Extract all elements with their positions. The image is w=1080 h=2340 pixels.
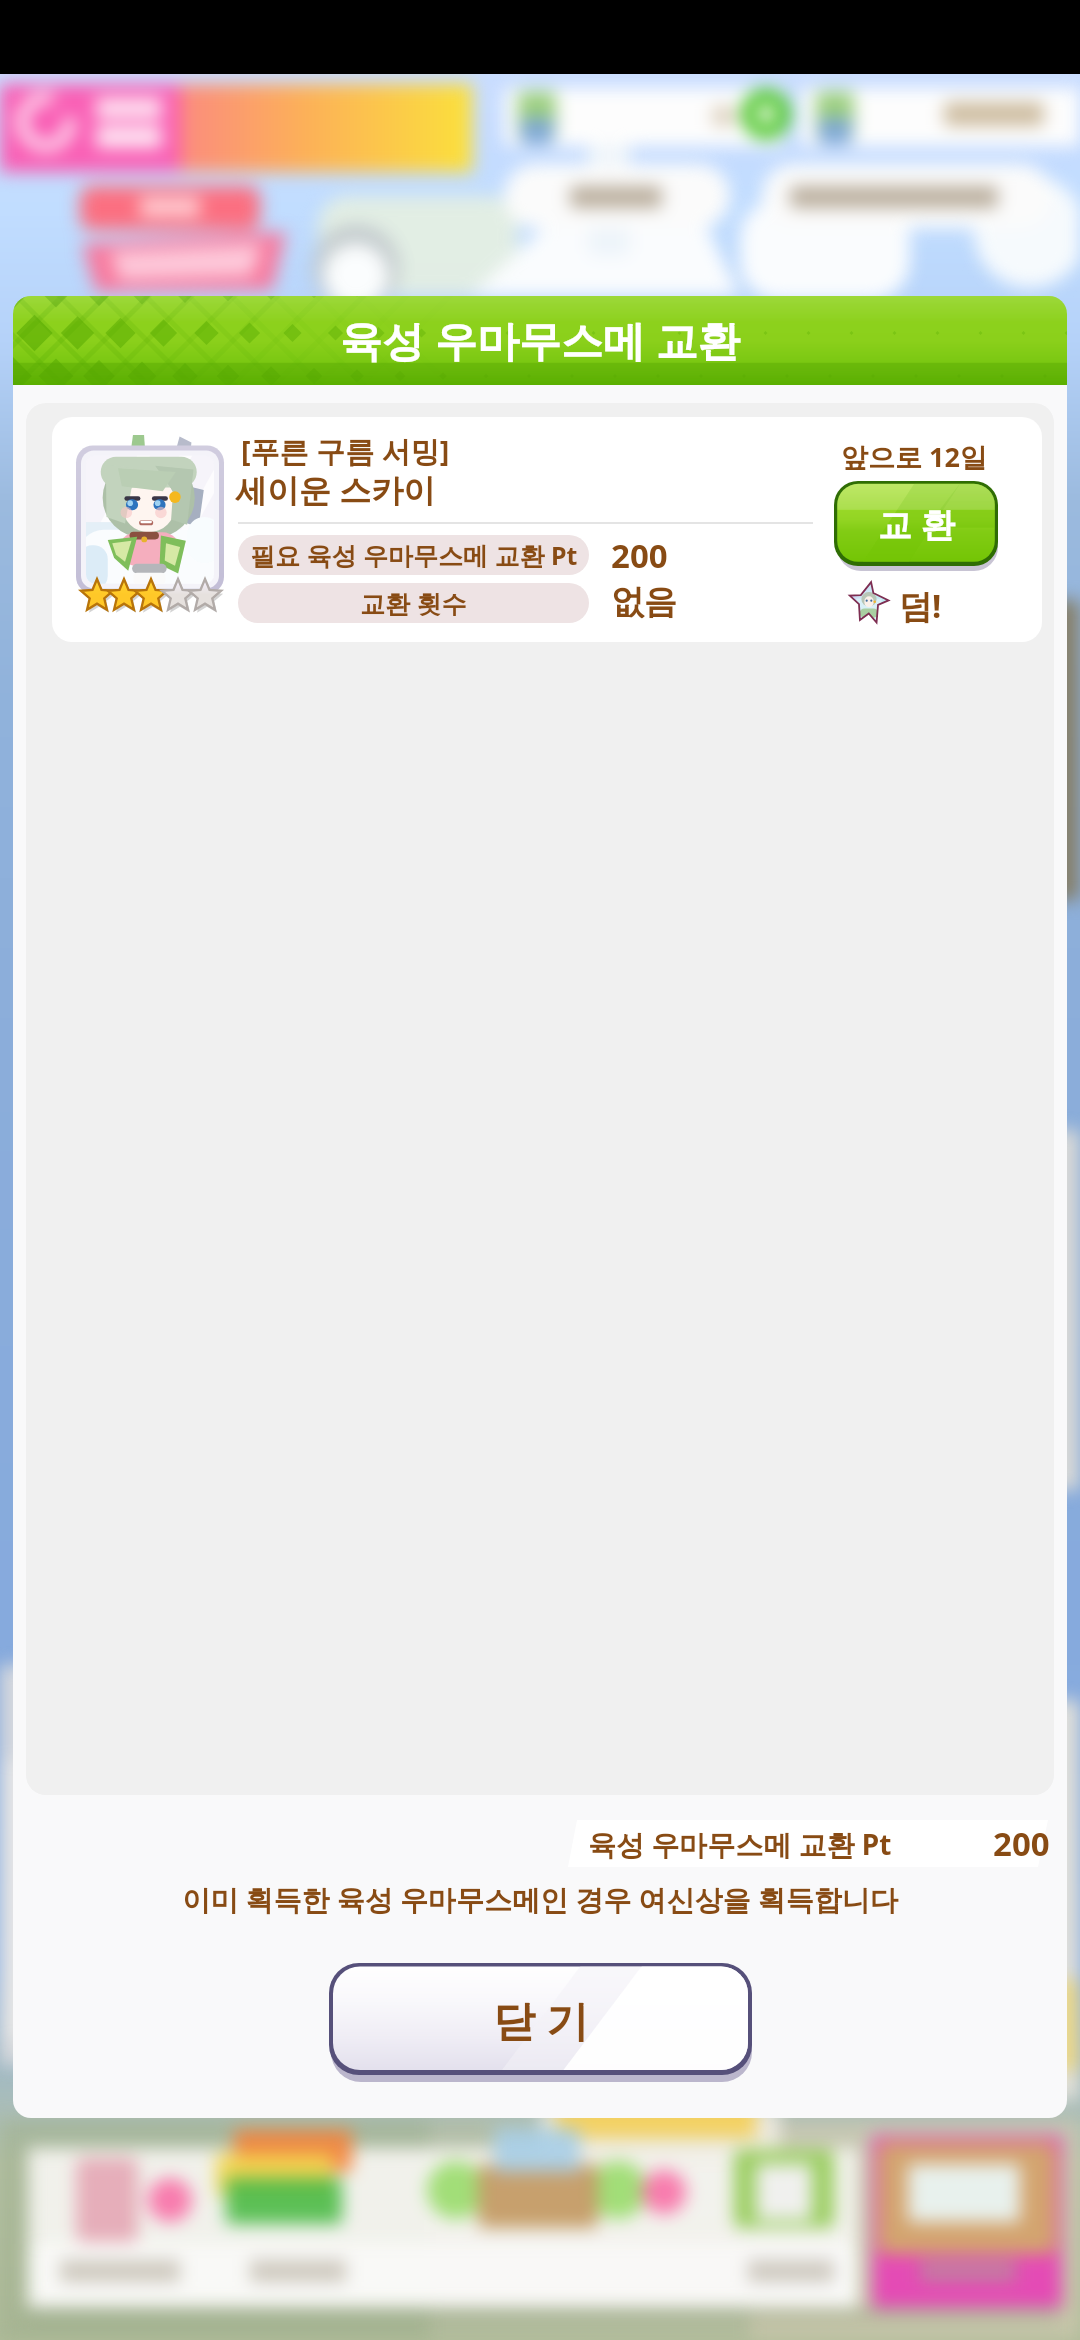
staticText: [푸른 구름 서밍] xyxy=(241,431,450,471)
button[interactable]: 닫 기 xyxy=(329,1963,752,2083)
button[interactable]: [푸른 구름 서밍] xyxy=(52,417,1042,642)
staticText: 육성 우마무스메 교환 xyxy=(340,311,740,368)
staticText: 육성 우마무스메 교환 Pt xyxy=(588,1825,892,1863)
staticText: 없음 xyxy=(611,581,677,621)
staticText: 교환 횟수 xyxy=(360,586,467,620)
staticText: 닫 기 xyxy=(493,1991,588,2048)
staticText: 200 xyxy=(993,1821,1050,1866)
staticText: 필요 육성 우마무스메 교환 Pt xyxy=(250,538,578,572)
staticText: 덤! xyxy=(899,583,942,628)
staticText: 앞으로 12일 xyxy=(804,438,1024,475)
staticText: 교 환 xyxy=(878,501,955,547)
staticText: 이미 획득한 육성 우마무스메인 경우 여신상을 획득합니다 xyxy=(13,1880,1067,1918)
button[interactable]: 교 환 xyxy=(834,481,998,572)
staticText: 세이운 스카이 xyxy=(235,468,436,512)
staticText: 200 xyxy=(611,533,668,573)
